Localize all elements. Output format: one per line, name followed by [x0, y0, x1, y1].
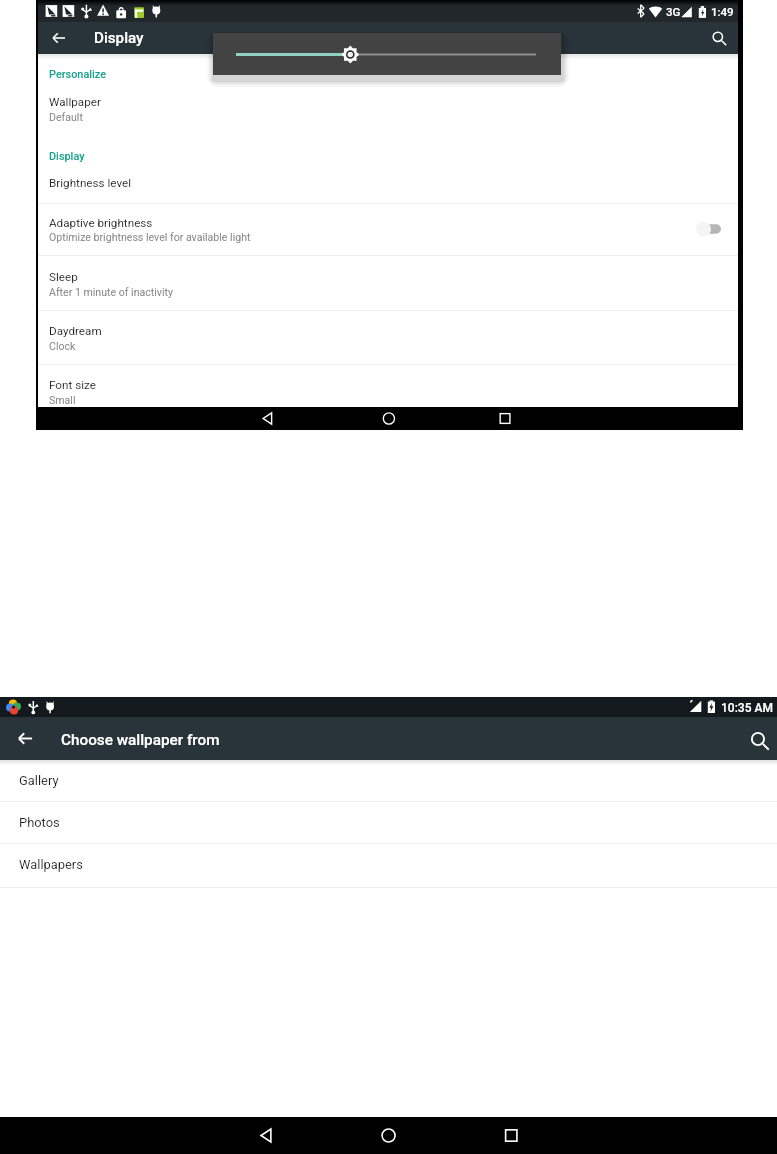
staticText: Clock — [49, 340, 76, 352]
button[interactable]: Search — [738, 719, 777, 762]
staticText: Personalize — [49, 68, 107, 81]
staticText: Wallpaper — [49, 95, 101, 109]
button[interactable]: Search — [703, 22, 735, 54]
button[interactable]: Wallpapers — [0, 844, 777, 887]
button[interactable]: Brightness slider — [213, 33, 561, 75]
staticText: Optimize brightness level for available … — [49, 231, 251, 243]
staticText: Display — [49, 150, 85, 163]
staticText: Gallery — [19, 773, 59, 788]
staticText: Display — [94, 29, 144, 47]
button[interactable]: Gallery — [0, 760, 777, 801]
button[interactable]: Font size — [38, 365, 738, 407]
button[interactable]: Adaptive brightness toggle — [690, 214, 726, 244]
staticText: 3G — [666, 5, 681, 18]
button[interactable]: Brightness level — [38, 165, 738, 203]
button[interactable]: Photos — [0, 802, 777, 843]
staticText: Small — [49, 394, 76, 406]
staticText: Choose wallpaper from — [61, 731, 220, 749]
staticText: Photos — [19, 815, 60, 830]
staticText: Daydream — [49, 324, 102, 338]
staticText: 10:35 AM — [721, 701, 773, 715]
button[interactable]: Sleep — [38, 256, 738, 310]
button[interactable]: Back — [4, 717, 47, 760]
staticText: Default — [49, 111, 83, 123]
staticText: After 1 minute of inactivity — [49, 286, 174, 298]
button[interactable]: Back — [43, 22, 75, 54]
staticText: Sleep — [49, 270, 78, 284]
staticText: Brightness level — [49, 176, 132, 190]
staticText: Wallpapers — [19, 857, 83, 872]
staticText: Font size — [49, 378, 96, 392]
button[interactable]: Daydream — [38, 311, 738, 364]
staticText: 1:49 — [711, 5, 734, 18]
button[interactable]: Adaptive brightness — [38, 204, 738, 255]
button[interactable]: Wallpaper — [38, 84, 738, 203]
staticText: Adaptive brightness — [49, 216, 153, 230]
